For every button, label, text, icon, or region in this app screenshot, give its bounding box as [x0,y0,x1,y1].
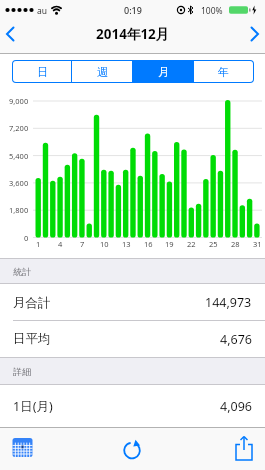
button[interactable]: 月 [133,61,193,82]
staticText: 3,600 [9,178,29,188]
staticText: 4,676 [220,331,252,348]
staticText: 28 [231,239,240,249]
staticText: 100% [201,5,223,17]
staticText: 詳細 [13,366,31,377]
staticText: 1,800 [9,205,29,215]
staticText: 月 [158,65,169,79]
staticText: 7,200 [9,123,29,133]
staticText: 16 [144,239,153,249]
staticText: 10 [100,239,109,249]
button[interactable] [229,434,259,464]
staticText: 19 [165,239,174,249]
button[interactable]: 月合計 [0,284,265,321]
button[interactable] [0,22,24,46]
button[interactable] [117,433,147,463]
button[interactable]: 日 [13,61,71,82]
staticText: 1日(月) [13,398,53,415]
staticText: 日 [37,65,48,79]
staticText: 31 [253,239,262,249]
staticText: 日平均 [13,331,51,347]
staticText: 4,096 [220,398,252,415]
button[interactable]: 1日(月) [0,385,265,427]
staticText: 月合計 [13,295,51,311]
staticText: 2014年12月 [96,25,170,43]
button[interactable]: 週 [72,61,132,82]
staticText: 13 [122,239,131,249]
button[interactable] [8,433,38,463]
button[interactable] [241,22,265,46]
staticText: 144,973 [205,294,252,311]
staticText: 1 [36,239,41,249]
button[interactable]: 日平均 [0,321,265,357]
staticText: 22 [187,239,196,249]
staticText: 統計 [13,266,31,277]
staticText: 5,400 [9,151,29,161]
staticText: 0 [24,233,29,243]
staticText: 週 [97,65,108,79]
staticText: 9,000 [9,96,29,106]
button[interactable]: 年 [194,61,253,82]
staticText: 0:19 [124,4,142,16]
staticText: 25 [209,239,218,249]
staticText: au [37,5,48,17]
staticText: 4 [58,239,63,249]
staticText: 7 [80,239,85,249]
staticText: 年 [218,65,229,79]
